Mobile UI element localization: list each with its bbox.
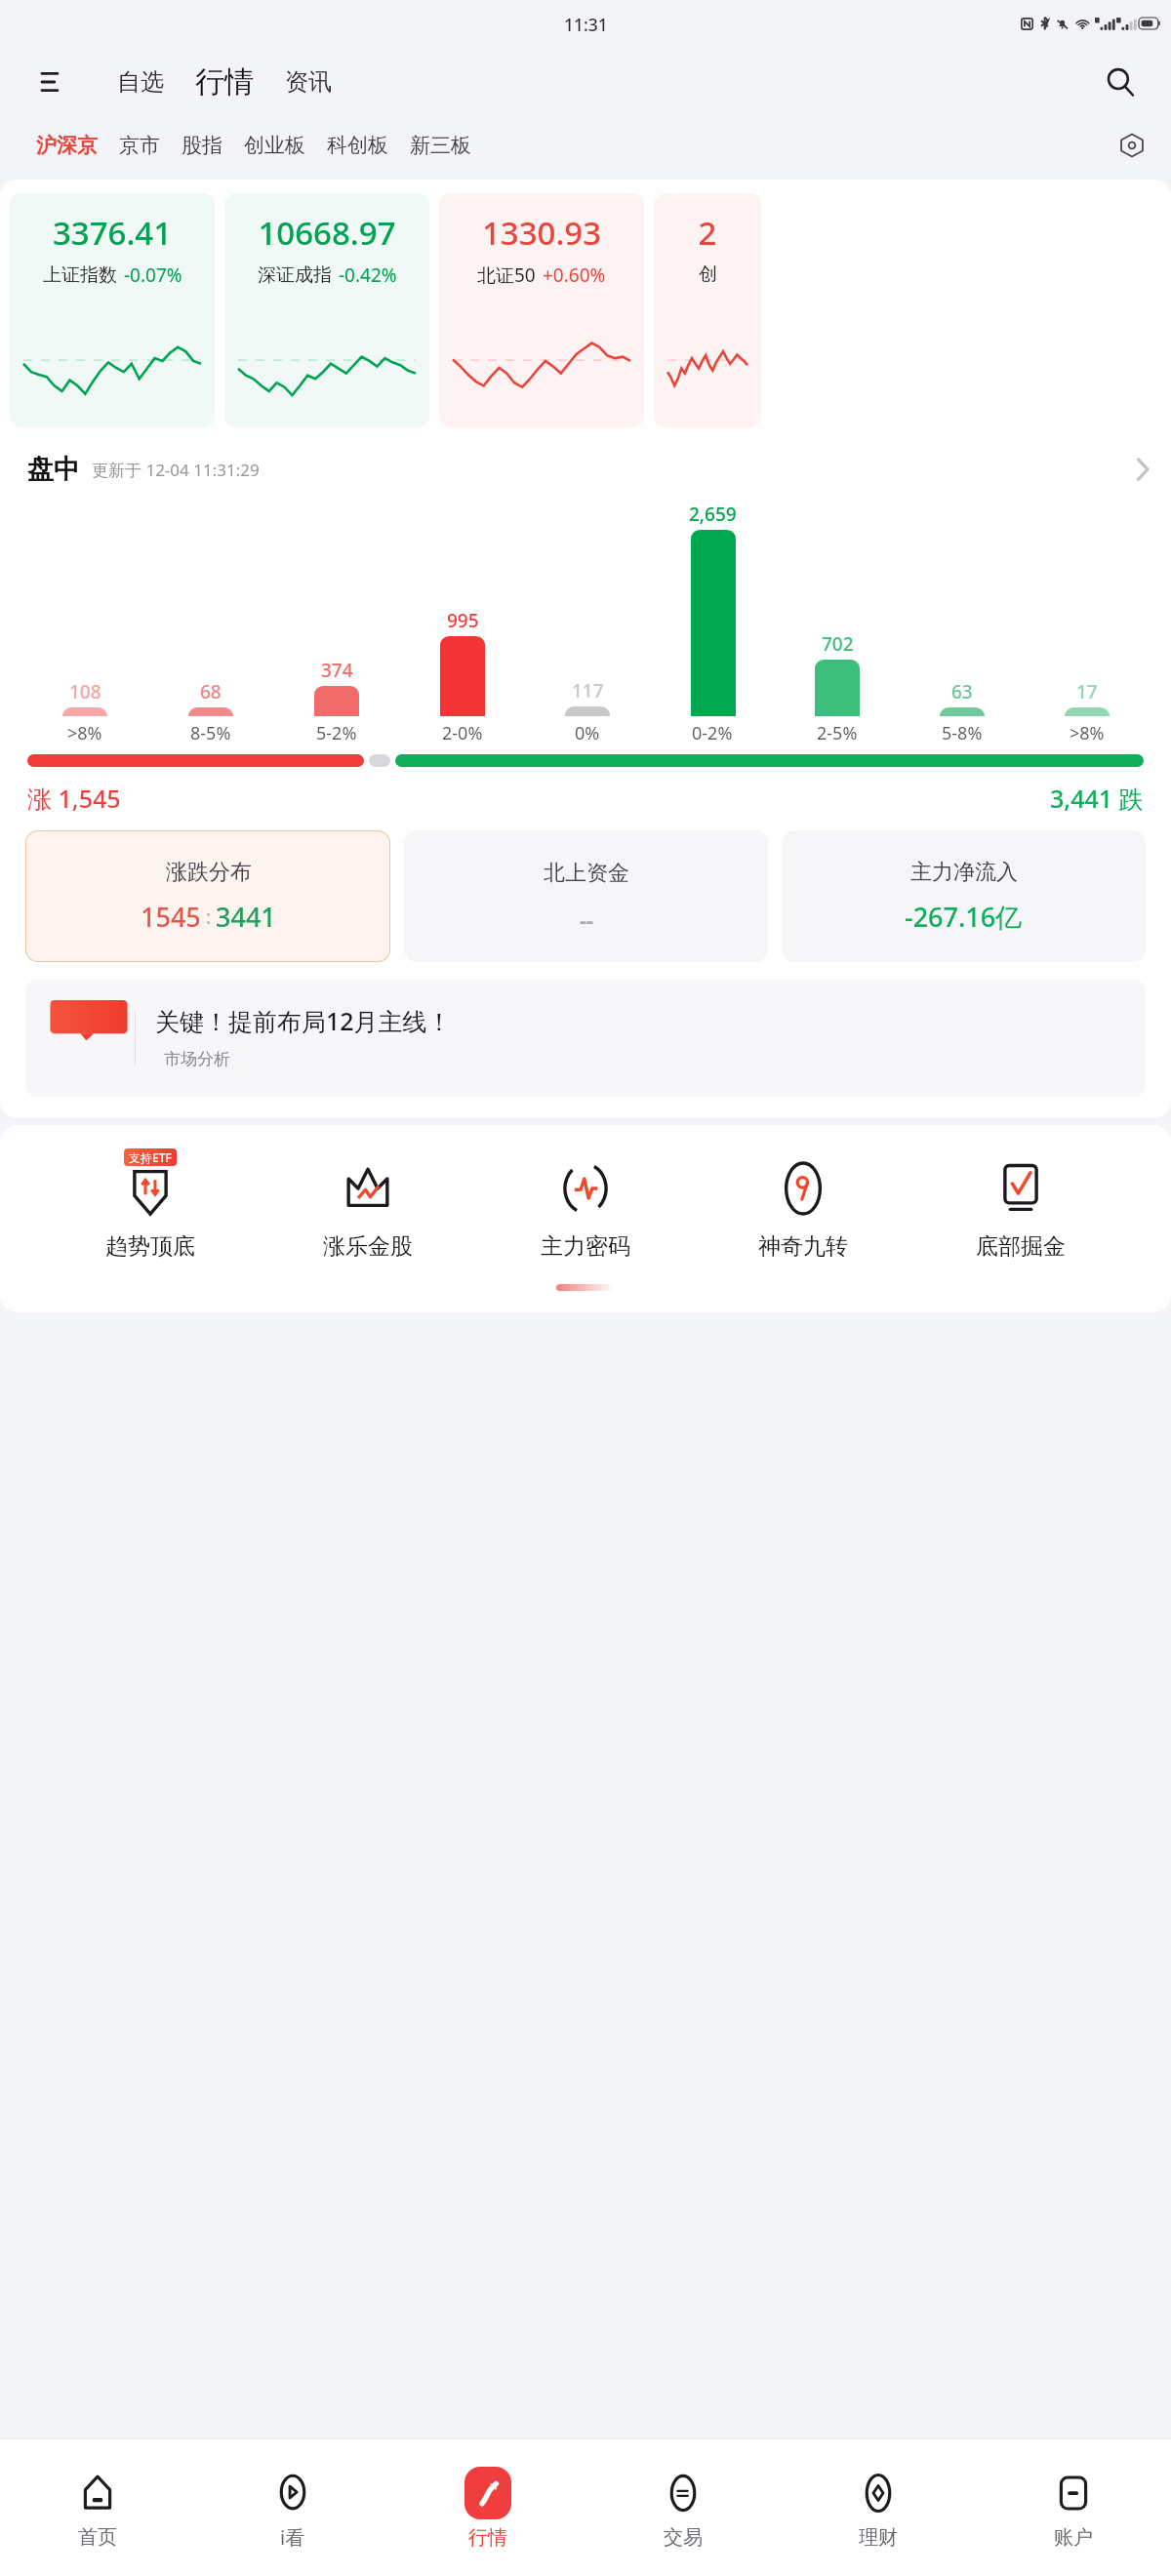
button[interactable]: 108 [21, 502, 147, 745]
staticText: 2,659 [689, 502, 737, 527]
staticText: >8% [1070, 721, 1105, 745]
staticText: 108 [69, 679, 101, 704]
staticText: 京市 [119, 133, 160, 158]
button[interactable]: Search [1097, 59, 1144, 105]
staticText: 底部掘金 [976, 1232, 1066, 1261]
button[interactable]: 创业板 [233, 128, 316, 163]
button[interactable]: 995 [399, 502, 525, 745]
staticText: 63 [951, 679, 973, 704]
button[interactable]: 63 [900, 502, 1025, 745]
staticText: 3,441 跌 [1050, 782, 1144, 815]
staticText: 8-5% [190, 721, 231, 745]
staticText: 10668.97 [224, 211, 429, 255]
staticText: 主力净流入 [910, 859, 1018, 886]
staticText: 374 [321, 658, 353, 683]
button[interactable]: 底部掘金 [938, 1150, 1104, 1261]
button[interactable]: 首页 [0, 2439, 195, 2576]
staticText: 17 [1076, 679, 1098, 704]
staticText: 5-2% [316, 721, 357, 745]
staticText: 神奇九转 [758, 1232, 848, 1261]
staticText: 11:31 [564, 13, 608, 36]
staticText: 北上资金 [544, 860, 629, 887]
staticText: -0.07% [124, 262, 182, 288]
staticText: 股指 [182, 133, 222, 158]
button[interactable]: 主力净流入 [782, 830, 1146, 962]
button[interactable]: 理财 [781, 2439, 976, 2576]
staticText: 主力密码 [541, 1232, 630, 1261]
button[interactable]: 北上资金 [404, 830, 768, 962]
button[interactable]: 68 [147, 502, 273, 745]
staticText: 支持ETF [129, 1149, 172, 1165]
button[interactable]: 3376.41 [10, 193, 215, 427]
staticText: 北证50 [477, 262, 536, 288]
staticText: 行情 [195, 63, 254, 101]
button[interactable]: 涨乐金股 [285, 1150, 451, 1261]
staticText: 盘中 [27, 453, 80, 486]
staticText: 1545 [141, 899, 201, 935]
staticText: 行情 [468, 2525, 507, 2550]
staticText: 2-5% [817, 721, 858, 745]
button[interactable]: 702 [775, 502, 900, 745]
button[interactable]: 盘中 [0, 447, 1171, 492]
staticText: +0.60% [543, 262, 606, 288]
staticText: 上证指数 [43, 263, 117, 287]
button[interactable]: 17 [1025, 502, 1150, 745]
staticText: 资讯 [285, 67, 332, 97]
staticText: -267.16亿 [905, 899, 1023, 935]
button[interactable]: 科创板 [316, 128, 399, 163]
staticText: 2 [654, 211, 761, 255]
button[interactable]: Settings [1110, 124, 1153, 167]
staticText: 科创板 [327, 133, 388, 158]
button[interactable]: 神奇九转 [720, 1150, 886, 1261]
button[interactable]: 主力密码 [503, 1150, 668, 1261]
staticText: 理财 [859, 2525, 898, 2550]
staticText: 趋势顶底 [105, 1232, 195, 1261]
staticText: 702 [822, 631, 854, 657]
staticText: 2-0% [442, 721, 483, 745]
button[interactable]: i看 [195, 2439, 390, 2576]
button[interactable]: 资讯 [275, 61, 342, 102]
button[interactable]: 涨跌分布 [25, 830, 390, 962]
button[interactable]: 行情 [390, 2439, 585, 2576]
button[interactable]: 1330.93 [439, 193, 644, 427]
button[interactable]: 账户 [976, 2439, 1171, 2576]
button[interactable]: 2 [654, 193, 761, 427]
staticText: 5-8% [942, 721, 983, 745]
staticText: i看 [280, 2524, 305, 2551]
staticText: 涨跌分布 [166, 859, 252, 886]
staticText: 涨乐金股 [323, 1232, 413, 1261]
staticText: 自选 [117, 67, 164, 97]
button[interactable]: 股指 [171, 128, 233, 163]
button[interactable]: 自选 [107, 61, 174, 102]
button[interactable]: 374 [273, 502, 399, 745]
staticText: 117 [572, 678, 604, 704]
staticText: 更新于 12-04 11:31:29 [92, 459, 260, 481]
staticText: 新三板 [410, 133, 471, 158]
button[interactable]: 10668.97 [224, 193, 429, 427]
button[interactable]: 2,659 [650, 502, 775, 745]
staticText: 68 [200, 679, 222, 704]
staticText: -- [580, 905, 594, 934]
button[interactable]: Menu [29, 60, 72, 103]
staticText: 0-2% [692, 721, 733, 745]
staticText: 0% [575, 721, 600, 745]
button[interactable]: 交易 [585, 2439, 781, 2576]
button[interactable]: 117 [525, 502, 650, 745]
staticText: 3376.41 [10, 211, 215, 255]
staticText: 市场分析 [164, 1049, 230, 1069]
button[interactable]: 沪深京 [25, 128, 108, 163]
staticText: 深证成指 [258, 263, 332, 287]
staticText: : [201, 905, 216, 930]
staticText: 交易 [664, 2525, 703, 2550]
staticText: >8% [67, 721, 102, 745]
staticText: 关键！提前布局12月主线！ [155, 1004, 452, 1037]
button[interactable]: 关键！提前布局12月主线！ [25, 980, 1146, 1097]
button[interactable]: 京市 [108, 128, 171, 163]
button[interactable]: 行情 [187, 61, 262, 102]
staticText: 沪深京 [36, 133, 98, 158]
staticText: 3441 [216, 899, 276, 935]
staticText: 995 [447, 608, 479, 633]
button[interactable]: 支持ETF [67, 1150, 233, 1261]
staticText: 首页 [78, 2525, 117, 2550]
button[interactable]: 新三板 [399, 128, 482, 163]
